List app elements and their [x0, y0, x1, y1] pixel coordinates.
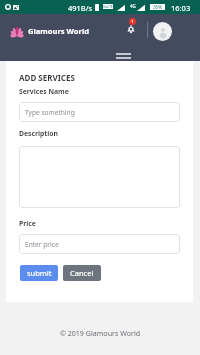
button[interactable] [19, 146, 180, 208]
button[interactable]: Enter price [19, 234, 180, 254]
staticText: ADD SERVICES [19, 72, 75, 83]
button[interactable]: Notifications [124, 18, 140, 40]
staticText: Glamours World [28, 26, 89, 36]
staticText: 4G [130, 3, 136, 9]
staticText: Type something [25, 108, 75, 117]
button[interactable]: Glamours World [9, 14, 89, 48]
button[interactable]: Profile [153, 22, 172, 41]
staticText: submit [27, 268, 52, 278]
staticText: VoLTE [103, 4, 113, 9]
staticText: Services Name [19, 87, 69, 96]
staticText: 491B/s [68, 3, 93, 13]
button[interactable]: submit [20, 265, 58, 281]
button[interactable]: Cancel [63, 265, 101, 281]
staticText: Enter price [25, 240, 59, 249]
staticText: Description [19, 129, 58, 138]
button[interactable]: Menu [113, 49, 133, 62]
staticText: 36% [153, 4, 162, 10]
staticText: Cancel [70, 268, 94, 278]
staticText: © 2019 Glamours World [0, 328, 200, 338]
staticText: 16:03 [171, 3, 191, 13]
staticText: 1 [131, 19, 134, 25]
button[interactable]: Type something [19, 102, 180, 122]
staticText: Price [19, 219, 36, 228]
